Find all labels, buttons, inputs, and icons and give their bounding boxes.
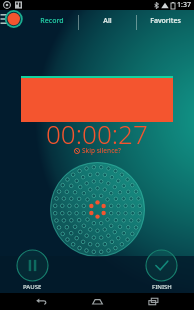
button[interactable]: FINISH: [145, 249, 178, 291]
button[interactable]: Back: [26, 293, 56, 310]
staticText: Record: [40, 16, 64, 26]
staticText: Skip silence?: [82, 146, 121, 155]
staticText: 00:00:27: [46, 116, 148, 151]
button[interactable]: Home: [82, 293, 112, 310]
staticText: All: [103, 16, 112, 26]
staticText: FINISH: [152, 283, 172, 291]
staticText: Favorites: [150, 16, 181, 26]
button[interactable]: Record: [26, 10, 78, 35]
staticText: 1:37: [177, 0, 191, 10]
staticText: PAUSE: [23, 283, 42, 291]
button[interactable]: All: [79, 10, 136, 35]
button[interactable]: Favorites: [137, 10, 194, 35]
button[interactable]: Open navigation drawer: [0, 10, 26, 35]
button[interactable]: PAUSE: [16, 249, 49, 291]
button[interactable]: Recent apps: [138, 293, 168, 310]
button[interactable]: Skip silence?: [72, 145, 123, 156]
